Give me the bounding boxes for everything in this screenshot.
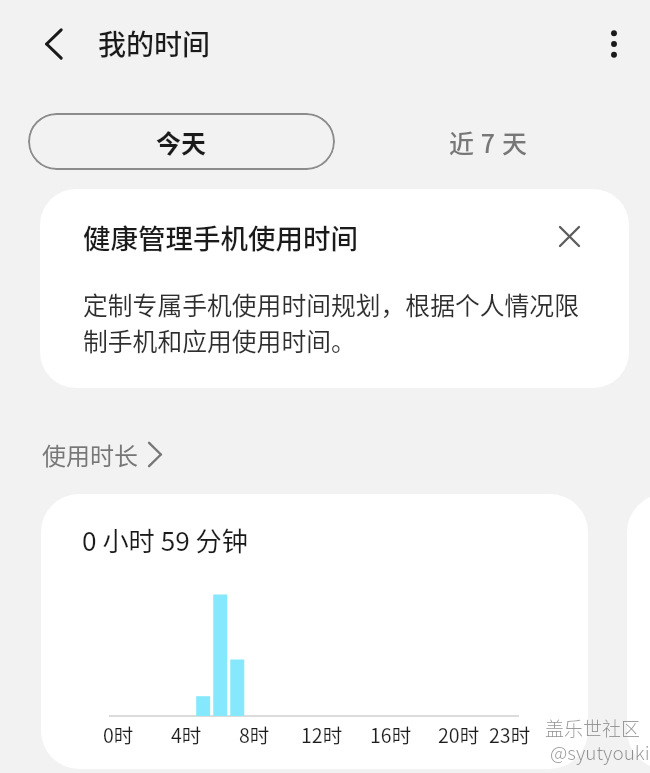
button[interactable]: Back: [29, 22, 73, 66]
staticText: 今天: [156, 124, 207, 160]
staticText: 8时: [239, 720, 270, 748]
button[interactable]: Next usage card: [627, 494, 650, 769]
staticText: 16时: [370, 720, 412, 748]
staticText: 0时: [103, 720, 134, 748]
staticText: 4时: [171, 720, 202, 748]
button[interactable]: More options: [594, 24, 634, 64]
staticText: 23时: [489, 720, 531, 748]
staticText: 盖乐世社区: [545, 714, 641, 742]
button[interactable]: Close: [549, 216, 589, 256]
staticText: @syutyouki: [550, 738, 650, 766]
button[interactable]: 近 7 天: [343, 113, 633, 170]
staticText: 使用时长: [42, 437, 138, 472]
staticText: 20时: [438, 720, 480, 748]
staticText: 定制专属手机使用时间规划，根据个人情况限制手机和应用使用时间。: [83, 286, 593, 358]
button[interactable]: 今天: [28, 113, 335, 170]
button[interactable]: 使用时长: [42, 436, 163, 472]
button[interactable]: 0 小时 59 分钟: [41, 494, 588, 769]
staticText: 近 7 天: [449, 124, 528, 160]
staticText: 健康管理手机使用时间: [83, 217, 358, 257]
staticText: 12时: [301, 720, 343, 748]
staticText: 0 小时 59 分钟: [82, 521, 248, 559]
staticText: 我的时间: [98, 23, 211, 64]
